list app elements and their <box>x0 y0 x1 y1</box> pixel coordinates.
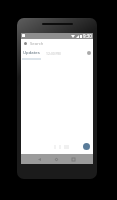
button[interactable]: Home <box>54 157 59 162</box>
button[interactable]: Compose <box>83 143 90 150</box>
staticText: 12:30 PM <box>46 51 61 56</box>
button[interactable]: Recents <box>71 157 76 162</box>
button[interactable]: Updates <box>21 48 93 58</box>
staticText: 9:30 <box>83 33 92 39</box>
other: Menu <box>24 42 27 45</box>
staticText: Search <box>30 41 44 47</box>
staticText: Updates <box>23 50 40 56</box>
button[interactable]: Back <box>37 157 42 162</box>
button[interactable]: Menu <box>21 39 93 48</box>
